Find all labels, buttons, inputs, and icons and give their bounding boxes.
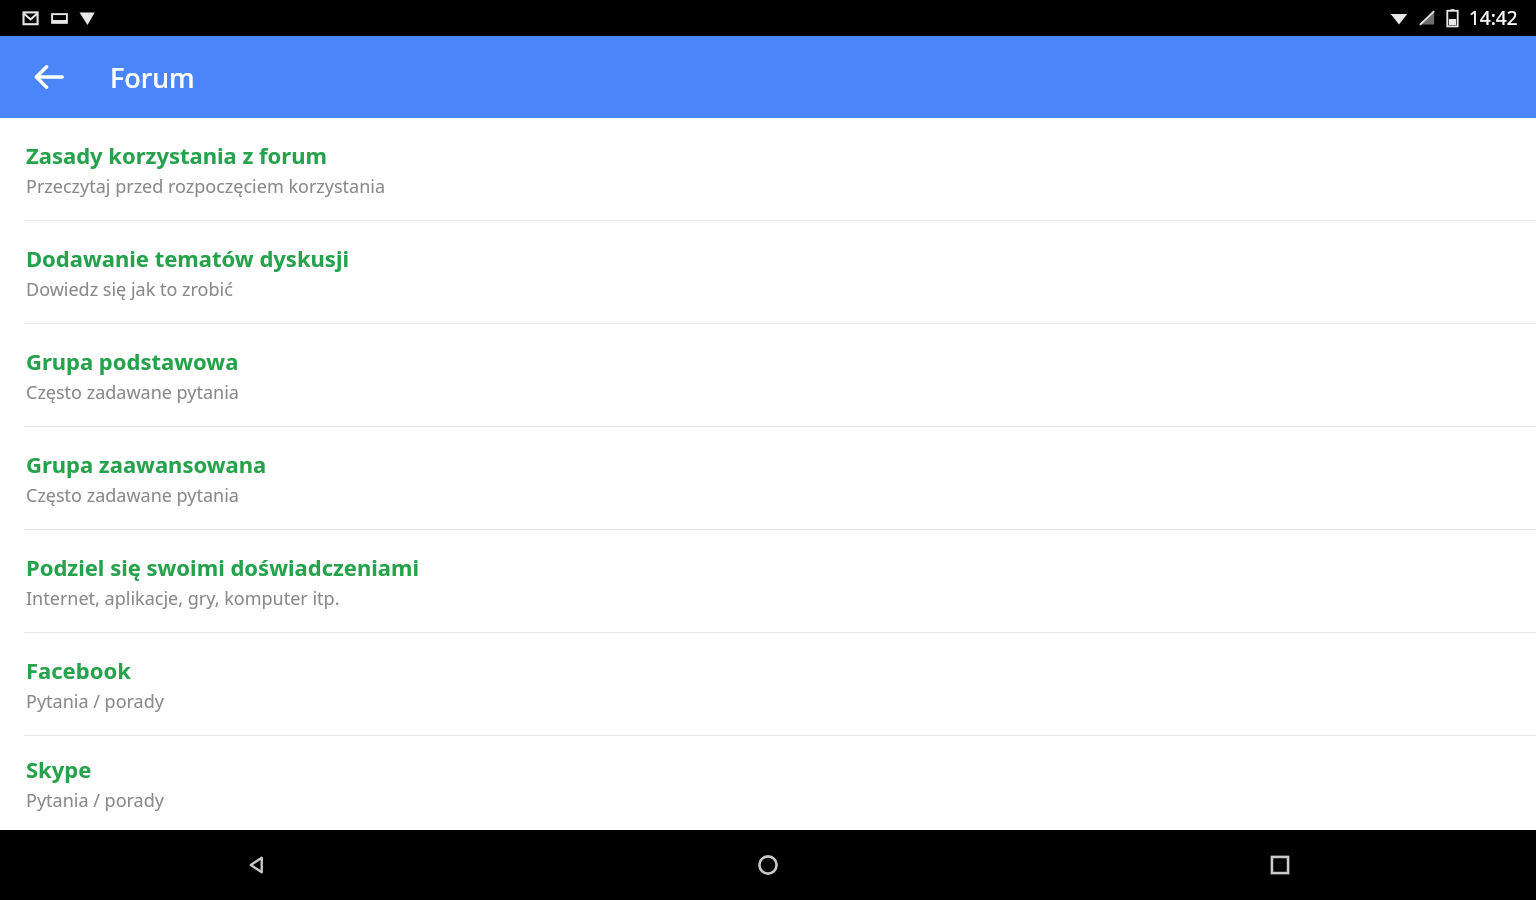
button[interactable]: Zasady korzystania z forum <box>0 118 1536 220</box>
staticText: Facebook <box>26 655 131 685</box>
button[interactable]: Back <box>0 830 512 900</box>
staticText: 14:42 <box>1469 5 1518 31</box>
staticText: Pytania / porady <box>26 788 164 813</box>
button[interactable]: Grupa zaawansowana <box>0 427 1536 529</box>
staticText: Dowiedz się jak to zrobić <box>26 277 233 302</box>
staticText: Zasady korzystania z forum <box>26 140 327 170</box>
button[interactable]: Skype <box>0 736 1536 830</box>
staticText: Skype <box>26 754 92 784</box>
staticText: Pytania / porady <box>26 689 164 714</box>
staticText: Przeczytaj przed rozpoczęciem korzystani… <box>26 174 386 199</box>
staticText: Internet, aplikacje, gry, komputer itp. <box>26 586 340 611</box>
staticText: Forum <box>110 59 195 96</box>
staticText: Dodawanie tematów dyskusji <box>26 243 350 273</box>
staticText: Grupa podstawowa <box>26 346 239 376</box>
button[interactable]: Podziel się swoimi doświadczeniami <box>0 530 1536 632</box>
button[interactable]: Home <box>512 830 1024 900</box>
staticText: Podziel się swoimi doświadczeniami <box>26 552 420 582</box>
button[interactable]: Recent apps <box>1024 830 1536 900</box>
button[interactable]: Grupa podstawowa <box>0 324 1536 426</box>
button[interactable]: Facebook <box>0 633 1536 735</box>
staticText: Często zadawane pytania <box>26 483 239 508</box>
staticText: Grupa zaawansowana <box>26 449 267 479</box>
button[interactable]: Back <box>22 50 76 104</box>
staticText: Często zadawane pytania <box>26 380 239 405</box>
button[interactable]: Dodawanie tematów dyskusji <box>0 221 1536 323</box>
